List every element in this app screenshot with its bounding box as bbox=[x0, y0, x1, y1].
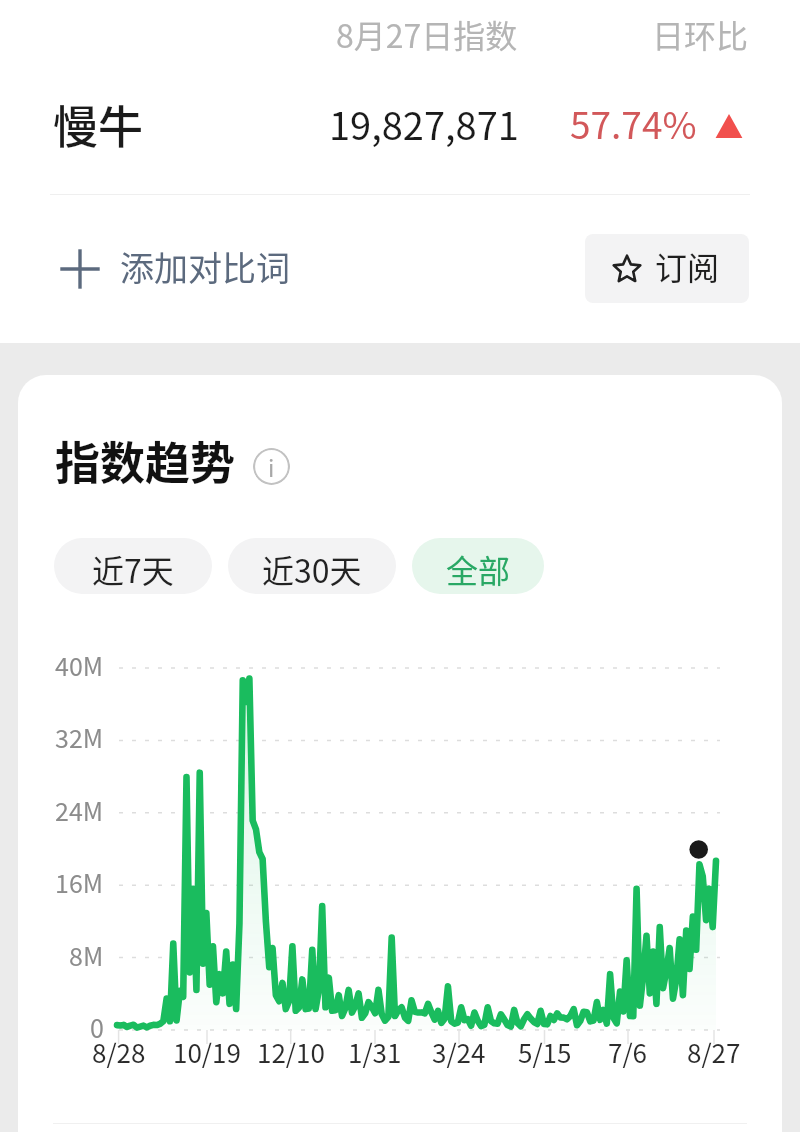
staticText: 3/24 bbox=[432, 1033, 486, 1071]
staticText: i bbox=[268, 450, 275, 483]
staticText: 订阅 bbox=[655, 243, 720, 289]
button[interactable]: 订阅 bbox=[585, 234, 749, 303]
staticText: 0 bbox=[90, 1009, 104, 1045]
staticText: 57.74% bbox=[570, 96, 697, 150]
staticText: 7/6 bbox=[608, 1033, 648, 1071]
staticText: 日环比 bbox=[652, 11, 749, 57]
staticText: 8月27日指数 bbox=[336, 11, 518, 57]
staticText: 19,827,871 bbox=[329, 96, 519, 151]
staticText: 8/28 bbox=[92, 1033, 146, 1071]
staticText: 12/10 bbox=[257, 1033, 325, 1071]
button[interactable]: 添加对比词 bbox=[48, 237, 300, 301]
staticText: 24M bbox=[55, 792, 104, 828]
staticText: 添加对比词 bbox=[120, 242, 290, 291]
button[interactable]: 近30天 bbox=[228, 538, 396, 594]
staticText: 40M bbox=[55, 647, 104, 683]
staticText: 全部 bbox=[446, 546, 511, 592]
staticText: 1/31 bbox=[348, 1033, 402, 1071]
staticText: 10/19 bbox=[173, 1033, 241, 1071]
staticText: 近30天 bbox=[262, 546, 362, 592]
staticText: 8/27 bbox=[687, 1033, 741, 1071]
staticText: 8M bbox=[69, 937, 104, 973]
staticText: 指数趋势 bbox=[55, 428, 236, 493]
button[interactable]: 全部 bbox=[412, 538, 544, 594]
staticText: 近7天 bbox=[92, 546, 174, 592]
button[interactable]: 近7天 bbox=[54, 538, 212, 594]
staticText: 慢牛 bbox=[53, 92, 144, 157]
staticText: 32M bbox=[55, 719, 104, 755]
staticText: 5/15 bbox=[518, 1033, 572, 1071]
staticText: 16M bbox=[55, 864, 104, 900]
button[interactable]: Info bbox=[253, 448, 290, 485]
